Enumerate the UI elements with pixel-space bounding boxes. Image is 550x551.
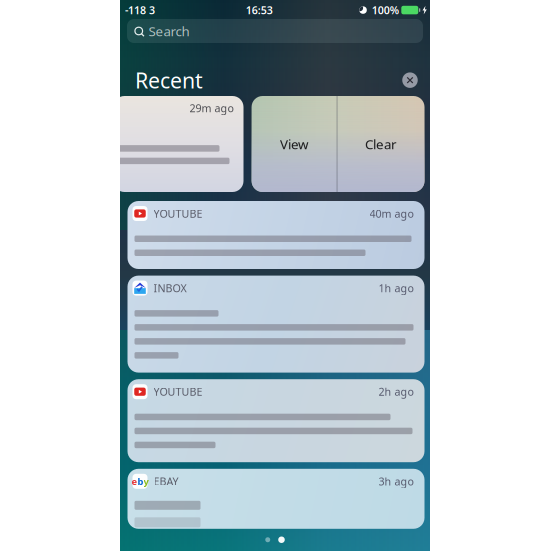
staticText: 2h ago	[378, 385, 413, 399]
button[interactable]: YOUTUBE	[127, 379, 424, 462]
staticText: View	[280, 135, 308, 153]
staticText: Clear	[365, 135, 397, 153]
staticText: INBOX	[153, 281, 186, 295]
staticText: YOUTUBE	[153, 385, 202, 399]
staticText: YOUTUBE	[153, 206, 202, 221]
staticText: 40m ago	[369, 206, 413, 221]
button[interactable]: INBOX	[127, 276, 424, 373]
button[interactable]: YOUTUBE	[127, 201, 424, 269]
staticText: 3h ago	[378, 474, 413, 488]
button[interactable]: Clear all notifications	[398, 68, 422, 92]
staticText: 100%	[372, 3, 399, 17]
staticText: y	[143, 475, 148, 487]
button[interactable]: Clear	[337, 96, 424, 192]
staticText: e	[131, 475, 137, 487]
staticText: Recent	[135, 66, 203, 94]
button[interactable]: e	[127, 469, 424, 529]
staticText: -118 3	[125, 3, 155, 17]
staticText: 1h ago	[378, 281, 413, 295]
button[interactable]: Search	[127, 19, 423, 43]
staticText: Search	[148, 22, 189, 40]
staticText: EBAY	[153, 474, 178, 488]
staticText: 16:53	[246, 3, 273, 17]
staticText: 29m ago	[189, 101, 233, 115]
staticText: b	[137, 475, 143, 487]
button[interactable]: View	[252, 96, 337, 192]
